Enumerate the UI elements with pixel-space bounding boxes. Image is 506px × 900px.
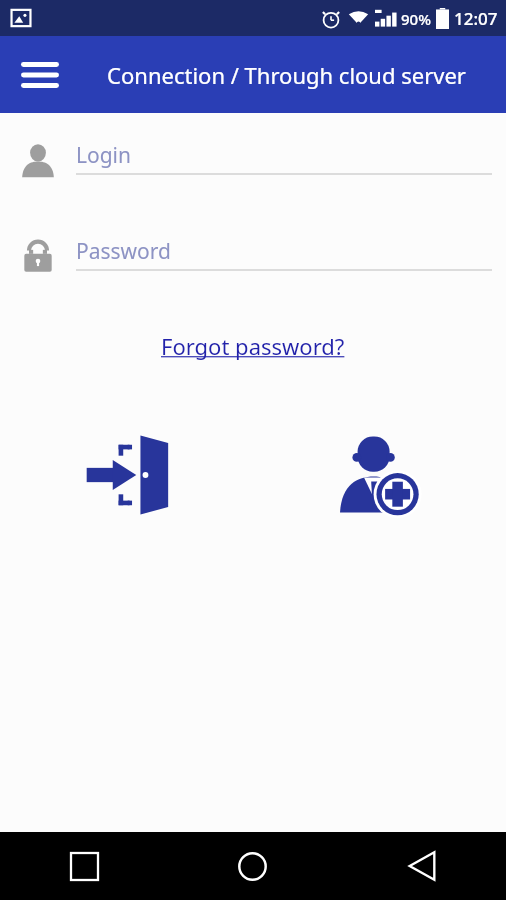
button[interactable]: Sign in: [79, 427, 175, 523]
staticText: Connection / Through cloud server: [107, 60, 466, 90]
staticText: 90%: [401, 9, 431, 29]
button[interactable]: Home: [168, 832, 337, 900]
staticText: Login: [76, 141, 132, 170]
button[interactable]: Forgot password?: [151, 327, 355, 365]
button[interactable]: Back: [337, 832, 506, 900]
button[interactable]: Register new account: [332, 427, 428, 523]
staticText: Password: [76, 237, 171, 266]
button[interactable]: Password: [0, 227, 506, 285]
button[interactable]: Open navigation menu: [14, 49, 66, 101]
button[interactable]: Login: [0, 131, 506, 189]
staticText: Forgot password?: [161, 331, 345, 361]
button[interactable]: Recent apps: [0, 832, 168, 900]
staticText: 12:07: [454, 7, 498, 30]
